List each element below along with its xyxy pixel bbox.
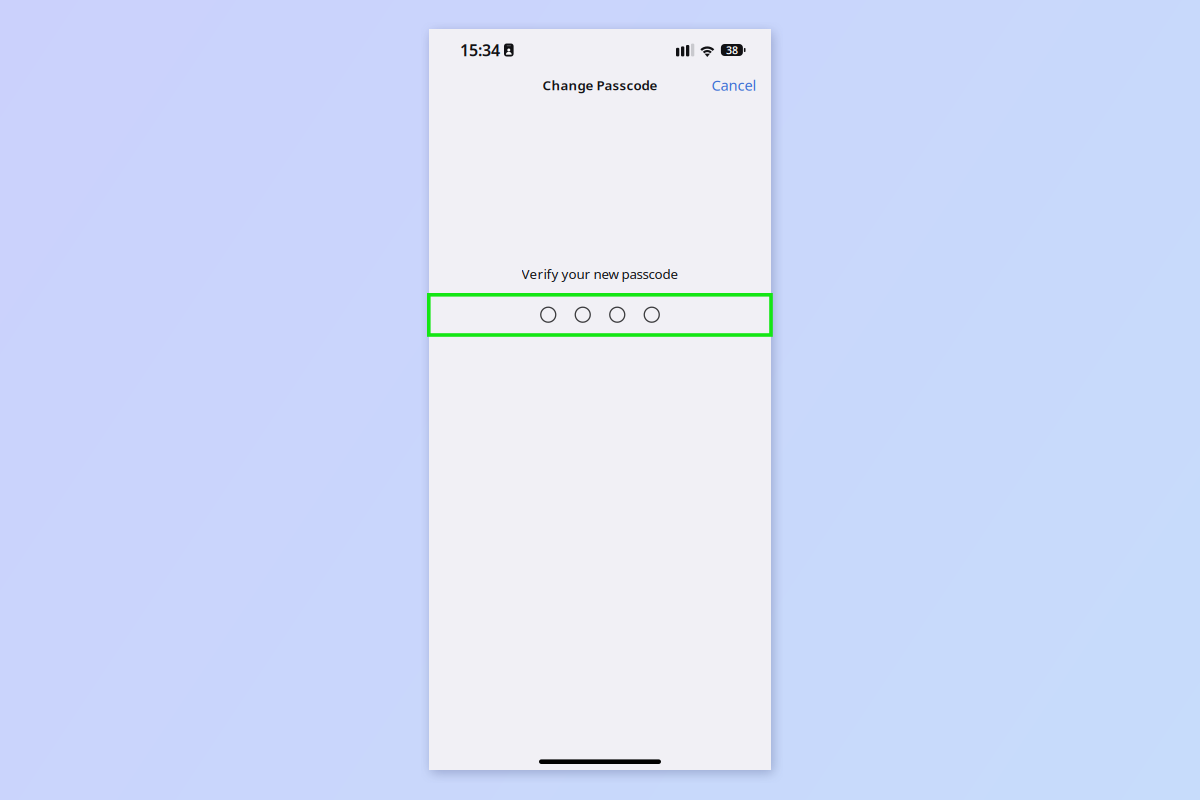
staticText: 15:34 — [460, 39, 500, 61]
staticText: 38 — [726, 43, 738, 57]
button[interactable]: Passcode entry — 4 digits — [429, 305, 771, 325]
staticText: Verify your new passcode — [521, 265, 678, 283]
staticText: Cancel — [711, 75, 756, 95]
staticText: Change Passcode — [542, 76, 657, 94]
button[interactable]: Cancel — [703, 68, 764, 102]
